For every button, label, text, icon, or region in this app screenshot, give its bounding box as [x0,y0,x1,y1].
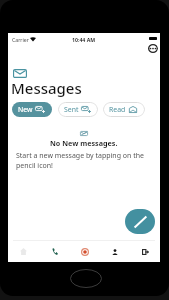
staticText: Read [109,105,126,114]
button[interactable]: Sent [58,102,98,117]
staticText: 10:44 AM [72,36,96,43]
button[interactable]: New [12,102,52,117]
button[interactable]: New message [125,209,155,234]
staticText: Sent [64,105,79,114]
staticText: No New messages. [50,138,118,148]
staticText: Carrier [12,36,29,43]
staticText: Start a new message by tapping on the pe… [16,151,153,170]
button[interactable]: Record [70,241,100,262]
button[interactable]: More options [147,43,158,54]
button[interactable]: Read [103,102,145,117]
button[interactable]: Calls [39,241,70,262]
button[interactable]: Logout [130,241,160,262]
staticText: New [18,105,33,114]
button[interactable]: Home [8,241,39,262]
button[interactable]: Profile [100,241,130,262]
staticText: Messages [11,78,82,98]
